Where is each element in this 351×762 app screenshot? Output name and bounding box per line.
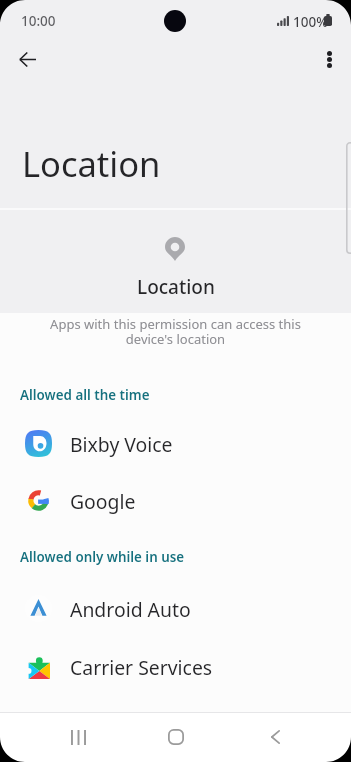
- button[interactable]: More options: [307, 37, 351, 82]
- staticText: Allowed only while in use: [20, 548, 185, 566]
- button[interactable]: Back: [251, 713, 299, 761]
- staticText: Carrier Services: [70, 654, 213, 680]
- staticText: Location: [22, 140, 161, 187]
- button[interactable]: [0, 700, 351, 713]
- staticText: Android Auto: [70, 596, 191, 622]
- button[interactable]: Google: [0, 471, 351, 529]
- button[interactable]: Carrier Services: [0, 637, 351, 695]
- staticText: Apps with this permission can access thi…: [0, 315, 351, 348]
- button[interactable]: Android Auto: [0, 579, 351, 637]
- button[interactable]: Home: [152, 713, 200, 761]
- button[interactable]: Navigate up: [5, 37, 50, 82]
- staticText: Bixby Voice: [70, 431, 173, 457]
- staticText: Allowed all the time: [20, 386, 150, 404]
- staticText: 10:00: [21, 12, 56, 30]
- staticText: Location: [137, 274, 215, 300]
- staticText: 100%: [293, 13, 328, 31]
- button[interactable]: Bixby Voice: [0, 414, 351, 472]
- staticText: Google: [70, 488, 136, 514]
- button[interactable]: Recent apps: [54, 713, 102, 761]
